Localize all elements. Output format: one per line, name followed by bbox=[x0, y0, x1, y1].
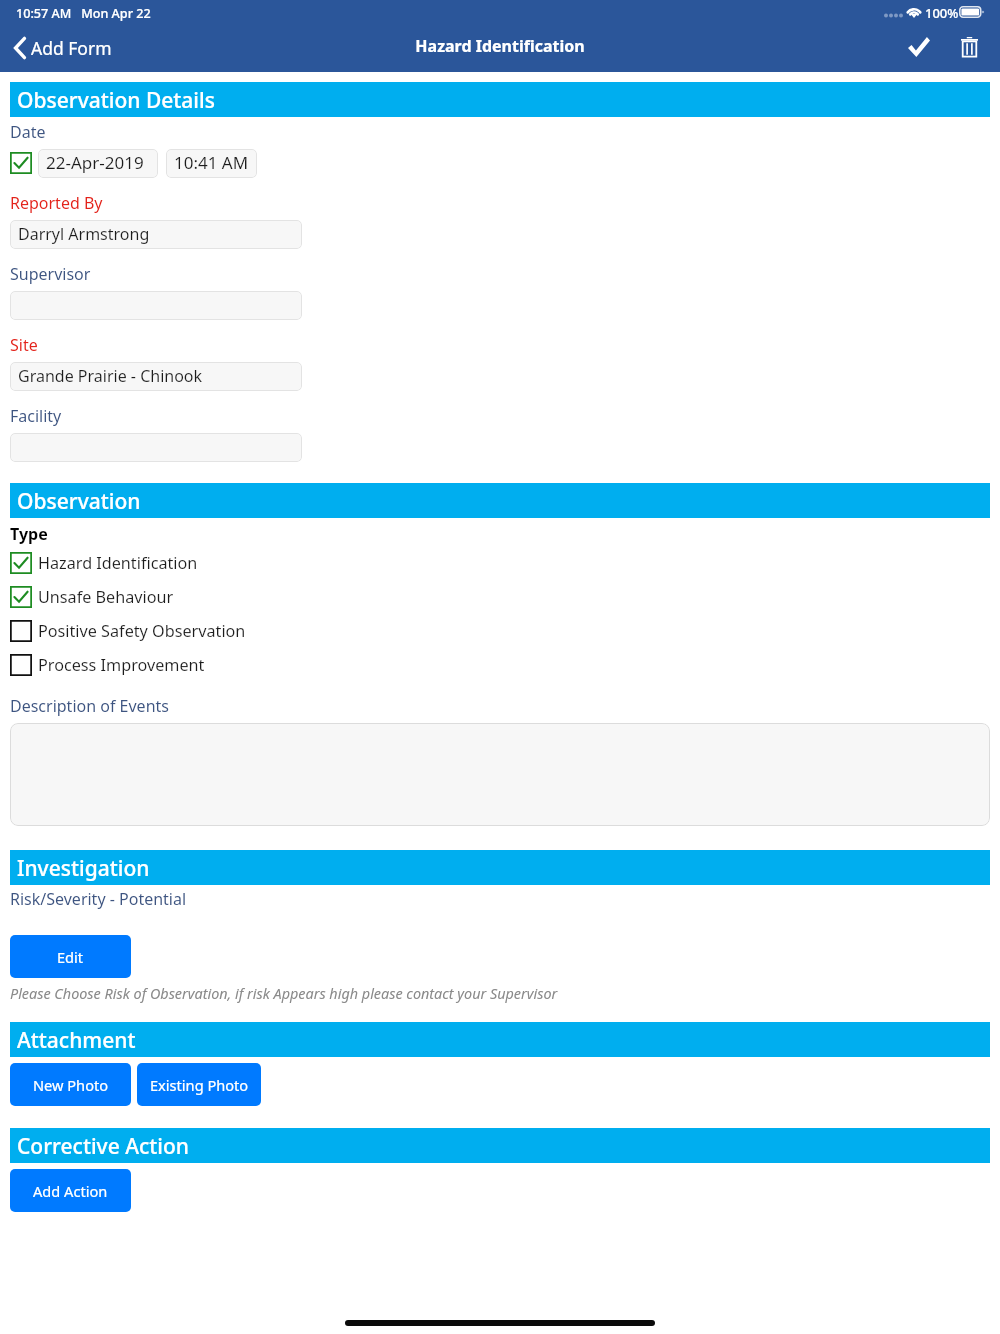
button[interactable]: Observation Details bbox=[10, 82, 990, 117]
staticText: 10:57 AM Mon Apr 22 bbox=[16, 5, 151, 22]
button[interactable]: Investigation bbox=[10, 850, 990, 885]
staticText: Attachment bbox=[17, 1026, 136, 1055]
staticText: Existing Photo bbox=[150, 1075, 249, 1095]
staticText: Observation Details bbox=[17, 86, 215, 115]
staticText: Add Form bbox=[31, 36, 112, 60]
staticText: Site bbox=[10, 334, 38, 356]
staticText: Reported By bbox=[10, 192, 103, 214]
button[interactable]: Darryl Armstrong bbox=[10, 220, 302, 249]
staticText: Darryl Armstrong bbox=[18, 223, 150, 245]
staticText: Grande Prairie - Chinook bbox=[18, 365, 203, 387]
staticText: Facility bbox=[10, 405, 62, 427]
staticText: Investigation bbox=[17, 854, 150, 883]
button[interactable]: Positive Safety Observation bbox=[10, 618, 430, 644]
button[interactable]: Unsafe Behaviour bbox=[10, 584, 430, 610]
button[interactable] bbox=[10, 723, 990, 826]
staticText: Process Improvement bbox=[38, 654, 205, 676]
button[interactable]: Corrective Action bbox=[10, 1128, 990, 1163]
button[interactable]: Attachment bbox=[10, 1022, 990, 1057]
button[interactable]: Grande Prairie - Chinook bbox=[10, 362, 302, 391]
button[interactable]: 10:41 AM bbox=[166, 149, 257, 178]
staticText: 22-Apr-2019 bbox=[46, 151, 144, 174]
staticText: Supervisor bbox=[10, 263, 91, 285]
staticText: Hazard Identification bbox=[38, 552, 198, 574]
button[interactable]: Existing Photo bbox=[137, 1063, 261, 1106]
button[interactable]: Hazard Identification bbox=[10, 550, 430, 576]
button[interactable]: New Photo bbox=[10, 1063, 131, 1106]
staticText: Add Action bbox=[33, 1181, 108, 1201]
button[interactable]: Save bbox=[896, 26, 941, 68]
staticText: Please Choose Risk of Observation, if ri… bbox=[10, 984, 558, 1004]
staticText: Observation bbox=[17, 487, 141, 516]
staticText: Positive Safety Observation bbox=[38, 620, 246, 642]
button[interactable]: Use current date bbox=[10, 152, 32, 174]
staticText: Hazard Identification bbox=[0, 35, 1000, 57]
staticText: Corrective Action bbox=[17, 1132, 189, 1161]
button[interactable]: Delete bbox=[947, 26, 992, 68]
staticText: Date bbox=[10, 121, 46, 143]
staticText: Risk/Severity - Potential bbox=[10, 888, 187, 910]
button[interactable]: Process Improvement bbox=[10, 652, 430, 678]
button[interactable] bbox=[10, 291, 302, 320]
staticText: Unsafe Behaviour bbox=[38, 586, 174, 608]
button[interactable]: Add Action bbox=[10, 1169, 131, 1212]
button[interactable]: Observation bbox=[10, 483, 990, 518]
staticText: Edit bbox=[57, 947, 84, 967]
staticText: New Photo bbox=[33, 1075, 109, 1095]
button[interactable]: Edit bbox=[10, 935, 131, 978]
button[interactable]: Add Form bbox=[9, 30, 116, 66]
staticText: 100% bbox=[925, 4, 959, 22]
staticText: Type bbox=[10, 523, 48, 545]
staticText: 10:41 AM bbox=[174, 151, 249, 174]
staticText: Description of Events bbox=[10, 695, 169, 717]
button[interactable]: 22-Apr-2019 bbox=[38, 149, 158, 178]
button[interactable] bbox=[10, 433, 302, 462]
